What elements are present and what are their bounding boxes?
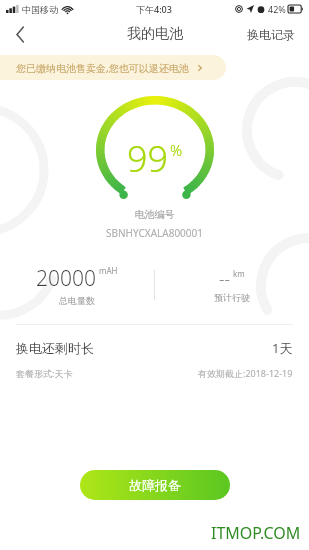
staticText: SBNHYCXALA800001	[0, 226, 309, 240]
staticText: 中国移动	[22, 4, 58, 15]
staticText: 换电还剩时长	[16, 340, 94, 356]
staticText: 您已缴纳电池售卖金,您也可以退还电池	[16, 61, 189, 75]
staticText: 预计行驶	[214, 292, 250, 303]
button[interactable]: 换电记录	[233, 21, 309, 48]
staticText: km	[233, 268, 245, 279]
staticText: 下午4:03	[136, 3, 172, 15]
staticText: mAH	[99, 265, 118, 276]
button[interactable]: 换电还剩时长	[0, 339, 309, 379]
staticText: ITMOP.COM	[211, 522, 301, 544]
staticText: 总电量数	[59, 295, 95, 306]
staticText: 电池编号	[0, 208, 309, 221]
staticText: 有效期截止:2018-12-19	[198, 367, 293, 379]
button[interactable]: 您已缴纳电池售卖金,您也可以退还电池	[0, 55, 226, 80]
staticText: 99	[127, 134, 169, 183]
button[interactable]: 故障报备	[80, 470, 230, 500]
staticText: --	[219, 267, 230, 290]
staticText: 换电记录	[247, 27, 295, 42]
staticText: 套餐形式:天卡	[16, 367, 73, 379]
button[interactable]: Back	[0, 18, 40, 50]
staticText: 故障报备	[129, 477, 181, 493]
staticText: %	[170, 140, 183, 160]
staticText: 42%	[268, 3, 286, 15]
staticText: 20000	[36, 264, 96, 293]
staticText: 我的电池	[127, 25, 183, 43]
staticText: 1天	[272, 339, 293, 357]
